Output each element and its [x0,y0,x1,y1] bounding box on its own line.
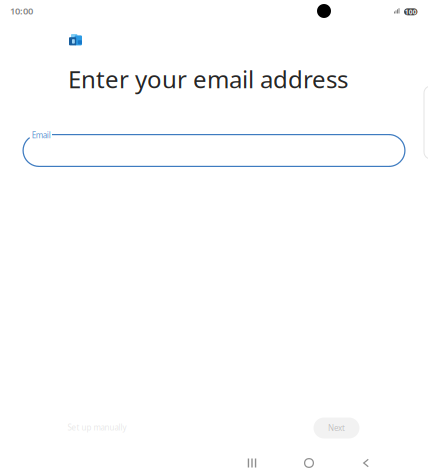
staticText: Set up manually [67,422,126,433]
button[interactable]: Recent apps [231,450,273,476]
button[interactable]: Back [345,450,387,476]
button[interactable]: Home [288,450,330,476]
button[interactable]: Next [313,417,359,438]
staticText: Enter your email address [68,63,348,95]
staticText: 100 [405,7,417,16]
button[interactable]: Email [22,134,405,167]
button[interactable]: Set up manually [63,417,130,438]
staticText: 10:00 [10,5,33,17]
staticText: Next [328,423,345,433]
staticText: Email [32,130,51,140]
